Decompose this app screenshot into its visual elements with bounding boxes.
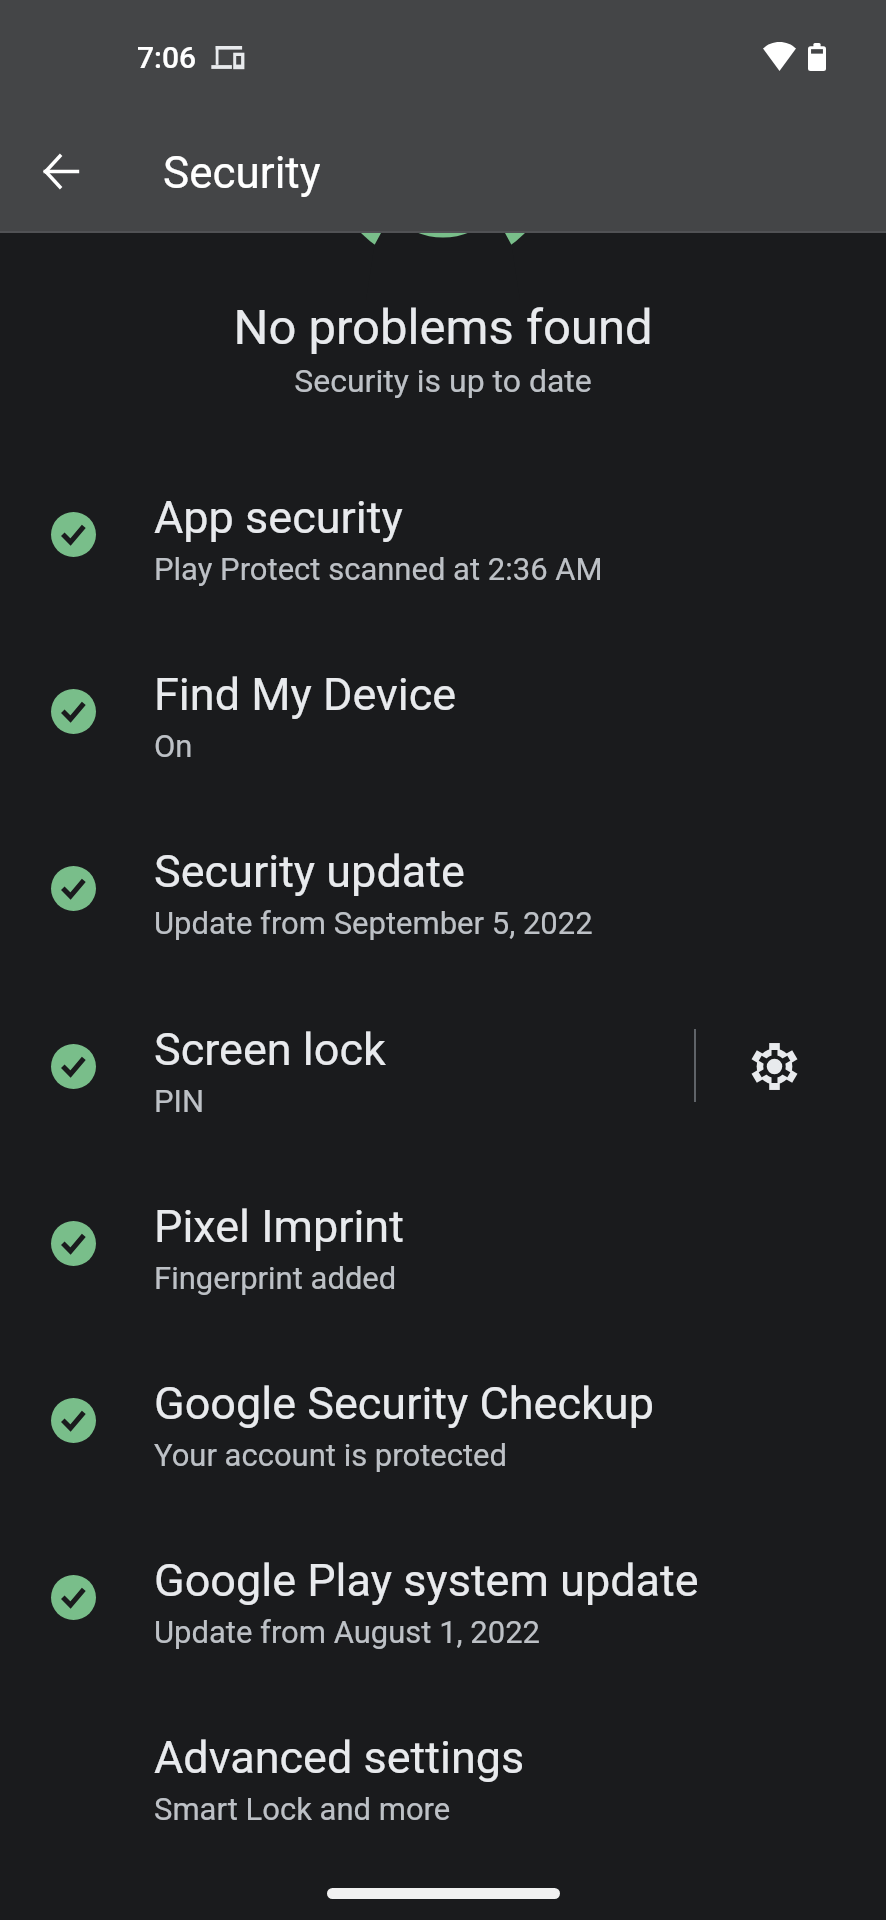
- button[interactable]: Screen lock settings: [742, 1034, 807, 1099]
- staticText: Google Security Checkup: [154, 1377, 654, 1430]
- staticText: Security update: [154, 845, 465, 898]
- staticText: On: [154, 728, 193, 764]
- staticText: Security is up to date: [0, 362, 886, 400]
- button[interactable]: Security update: [0, 809, 886, 986]
- staticText: Fingerprint added: [154, 1260, 397, 1296]
- staticText: Google Play system update: [154, 1554, 699, 1607]
- button[interactable]: Back: [25, 135, 97, 207]
- staticText: Security: [163, 147, 321, 199]
- button[interactable]: Screen lock: [0, 987, 886, 1164]
- staticText: Smart Lock and more: [154, 1791, 451, 1827]
- staticText: Play Protect scanned at 2:36 AM: [154, 551, 603, 587]
- button[interactable]: Google Play system update: [0, 1518, 886, 1695]
- staticText: No problems found: [0, 299, 886, 356]
- staticText: 7:06: [137, 40, 197, 75]
- staticText: Update from September 5, 2022: [154, 905, 593, 941]
- staticText: Your account is protected: [154, 1437, 508, 1473]
- button[interactable]: Pixel Imprint: [0, 1164, 886, 1341]
- button[interactable]: Find My Device: [0, 632, 886, 809]
- button[interactable]: App security: [0, 455, 886, 632]
- staticText: Advanced settings: [154, 1731, 525, 1784]
- staticText: Pixel Imprint: [154, 1200, 404, 1253]
- staticText: Screen lock: [154, 1023, 386, 1076]
- staticText: PIN: [154, 1083, 205, 1119]
- button[interactable]: Advanced settings: [0, 1695, 886, 1872]
- staticText: Find My Device: [154, 668, 457, 721]
- button[interactable]: Google Security Checkup: [0, 1341, 886, 1518]
- staticText: Update from August 1, 2022: [154, 1614, 541, 1650]
- staticText: App security: [154, 491, 403, 544]
